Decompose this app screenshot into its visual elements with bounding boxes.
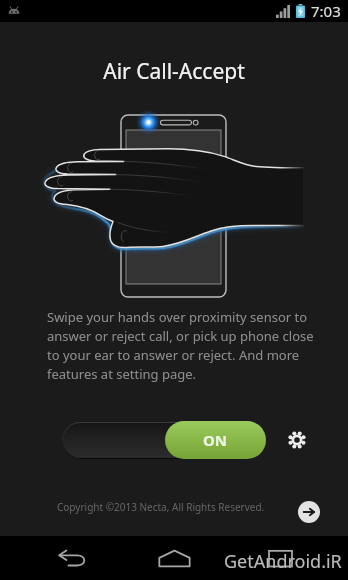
button[interactable]: Recent apps [250,536,310,580]
staticText: Swipe your hands over proximity sensor t… [47,308,328,383]
button[interactable]: Home [144,536,204,580]
button[interactable]: ON [165,421,266,459]
staticText: Copyright ©2013 Necta, All Rights Reserv… [57,500,265,514]
button[interactable]: Settings [284,427,310,453]
staticText: 7:03 [311,1,341,21]
staticText: ON [203,430,228,450]
button[interactable] [63,423,265,458]
button[interactable]: Next [298,501,320,523]
staticText: GetAndroid.iR [224,549,342,574]
staticText: Air Call-Accept [103,57,245,83]
button[interactable]: Back [42,536,102,580]
